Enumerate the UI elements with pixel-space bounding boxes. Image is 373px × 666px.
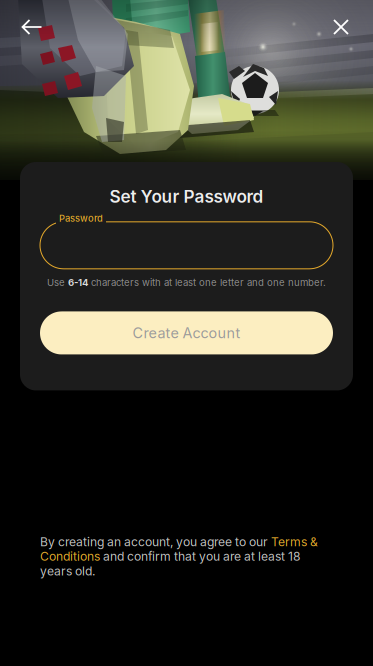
staticText: Create Account bbox=[132, 324, 240, 342]
button[interactable]: Create Account bbox=[40, 311, 333, 354]
button[interactable]: Close bbox=[319, 5, 363, 49]
staticText: Password bbox=[59, 213, 103, 224]
staticText: Use 6-14 characters with at least one le… bbox=[47, 277, 326, 288]
staticText: By creating an account, you agree to our… bbox=[40, 534, 318, 578]
staticText: Set Your Password bbox=[109, 186, 263, 207]
button[interactable]: Back bbox=[10, 5, 54, 49]
